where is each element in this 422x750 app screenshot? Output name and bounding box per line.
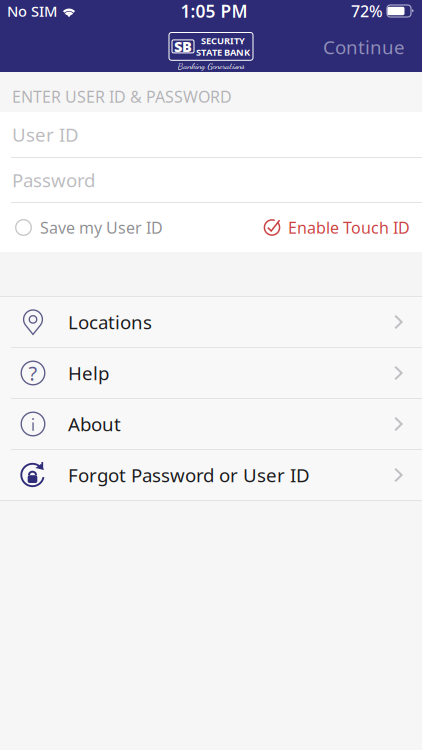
button[interactable]: ? (0, 348, 422, 399)
staticText: ENTER USER ID & PASSWORD (12, 86, 232, 107)
staticText: SB (174, 37, 192, 56)
button[interactable]: User ID (0, 112, 422, 157)
staticText: SECURITY (201, 34, 245, 47)
staticText: 1:05 PM (180, 0, 247, 22)
button[interactable]: Continue (307, 23, 422, 71)
staticText: No SIM (7, 1, 57, 21)
button[interactable]: Save my User ID (15, 201, 163, 254)
button[interactable]: Locations (0, 297, 422, 348)
staticText: About (68, 412, 121, 436)
staticText: Save my User ID (40, 217, 163, 238)
staticText: 72% (351, 0, 383, 22)
staticText: Forgot Password or User ID (68, 463, 310, 487)
staticText: STATE BANK (196, 46, 250, 58)
staticText: Banking Generations (177, 60, 244, 71)
button[interactable]: Password (0, 158, 422, 202)
staticText: Password (12, 168, 95, 192)
button[interactable]: Enable Touch ID (263, 201, 410, 254)
staticText: Help (68, 361, 109, 385)
staticText: Continue (323, 35, 405, 59)
staticText: Locations (68, 310, 152, 334)
button[interactable]: Forgot Password or User ID (0, 450, 422, 501)
staticText: ? (28, 360, 37, 386)
staticText: Enable Touch ID (288, 217, 410, 238)
staticText: User ID (12, 122, 79, 147)
button[interactable]: About (0, 399, 422, 450)
